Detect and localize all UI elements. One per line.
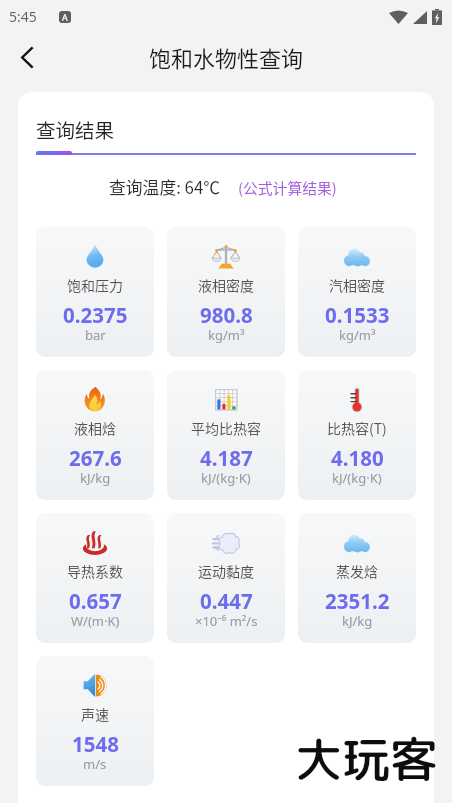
staticText: 饱和压力 — [67, 275, 123, 295]
button[interactable]: 汽相密度 — [298, 227, 416, 357]
staticText: 大玩客 — [295, 726, 438, 792]
staticText: 导热系数 — [67, 561, 123, 581]
staticText: 声速 — [81, 704, 109, 724]
staticText: 比热容(T) — [327, 418, 387, 438]
button[interactable]: 液相焓 — [36, 370, 154, 500]
button[interactable]: 声速 — [36, 656, 154, 786]
button[interactable]: 饱和压力 — [36, 227, 154, 357]
button[interactable]: 运动黏度 — [167, 513, 285, 643]
staticText: 液相焓 — [74, 418, 116, 438]
button[interactable]: 蒸发焓 — [298, 513, 416, 643]
staticText: kJ/kg — [342, 612, 373, 630]
staticText: ×10⁻⁶ m²/s — [195, 612, 258, 630]
staticText: 1548 — [72, 730, 119, 753]
staticText: 汽相密度 — [329, 275, 385, 295]
button[interactable]: 比热容(T) — [298, 370, 416, 500]
staticText: 液相密度 — [198, 275, 254, 295]
staticText: kg/m³ — [208, 326, 245, 344]
staticText: 平均比热容 — [191, 418, 261, 438]
staticText: kJ/kg — [80, 469, 111, 487]
button[interactable]: 导热系数 — [36, 513, 154, 643]
staticText: kg/m³ — [339, 326, 376, 344]
button[interactable]: 液相密度 — [167, 227, 285, 357]
staticText: 饱和水物性查询 — [149, 41, 304, 73]
staticText: m/s — [83, 755, 107, 773]
staticText: 0.2375 — [63, 301, 128, 324]
staticText: 蒸发焓 — [336, 561, 378, 581]
staticText: (公式计算结果) — [238, 177, 337, 198]
staticText: 4.187 — [200, 444, 253, 467]
staticText: 0.1533 — [325, 301, 390, 324]
button[interactable]: Back — [5, 35, 49, 79]
staticText: 0.657 — [69, 587, 122, 610]
staticText: 4.180 — [331, 444, 384, 467]
button[interactable]: 平均比热容 — [167, 370, 285, 500]
staticText: 980.8 — [200, 301, 253, 324]
staticText: 查询温度: 64℃ — [109, 175, 221, 199]
staticText: 267.6 — [69, 444, 122, 467]
staticText: 5:45 — [9, 7, 37, 26]
staticText: 0.447 — [200, 587, 253, 610]
staticText: kJ/(kg·K) — [201, 469, 251, 487]
staticText: kJ/(kg·K) — [332, 469, 382, 487]
staticText: 2351.2 — [325, 587, 390, 610]
staticText: A — [62, 11, 68, 23]
staticText: bar — [85, 326, 106, 344]
staticText: 运动黏度 — [198, 561, 254, 581]
staticText: W/(m·K) — [71, 612, 120, 630]
staticText: 查询结果 — [36, 115, 115, 143]
